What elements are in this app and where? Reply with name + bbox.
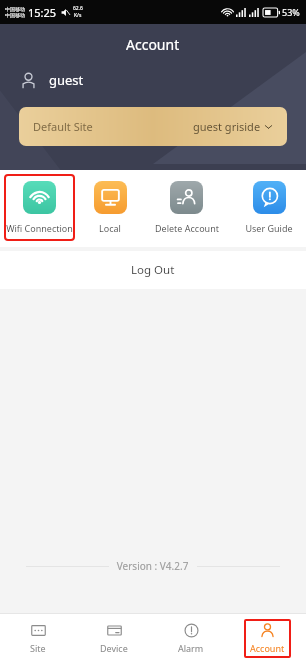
staticText: Alarm	[178, 642, 204, 654]
staticText: 中国移动	[5, 6, 25, 12]
button[interactable]: Device	[94, 619, 134, 658]
staticText: 15:25	[28, 5, 57, 20]
staticText: 62.6	[73, 5, 83, 12]
staticText: guest	[49, 71, 84, 89]
button[interactable]: Default Site	[19, 107, 287, 146]
staticText: 53%	[282, 6, 300, 18]
button[interactable]: Alarm	[172, 619, 210, 658]
staticText: Site	[30, 642, 46, 654]
staticText: User Guide	[245, 222, 293, 234]
staticText: Account	[126, 35, 180, 54]
staticText: Account	[250, 642, 285, 654]
button[interactable]: Local	[79, 174, 141, 241]
staticText: Delete Account	[155, 222, 219, 234]
staticText: Log Out	[131, 262, 175, 278]
button[interactable]: Wifi Connection	[4, 174, 75, 241]
button[interactable]: Log Out	[0, 251, 306, 289]
staticText: Local	[99, 222, 121, 234]
button[interactable]: guest	[0, 69, 306, 91]
staticText: Device	[100, 642, 128, 654]
button[interactable]: Account	[244, 619, 291, 658]
staticText: Default Site	[33, 119, 93, 134]
button[interactable]: Delete Account	[141, 174, 232, 241]
staticText: Wifi Connection	[6, 222, 73, 234]
staticText: Version : V4.2.7	[109, 559, 197, 573]
staticText: guest griside	[193, 119, 261, 134]
button[interactable]: Site	[24, 619, 52, 658]
staticText: K/s	[74, 12, 82, 19]
button[interactable]: User Guide	[232, 174, 306, 241]
staticText: 中国移动	[5, 12, 25, 18]
